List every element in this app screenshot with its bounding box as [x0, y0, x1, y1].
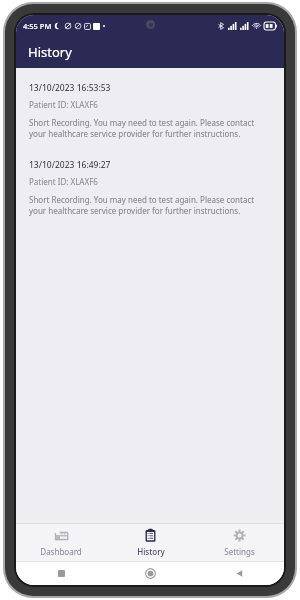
staticText: Dashboard: [40, 546, 82, 557]
staticText: Patient ID: XLAXF6: [29, 99, 98, 110]
staticText: 4:55 PM: [23, 21, 52, 31]
staticText: History: [137, 546, 165, 557]
staticText: Short Recording. You may need to test ag…: [29, 194, 271, 216]
staticText: History: [28, 43, 72, 61]
button[interactable]: Recent apps: [16, 562, 106, 585]
staticText: Short Recording. You may need to test ag…: [29, 117, 271, 139]
staticText: Patient ID: XLAXF6: [29, 176, 98, 187]
staticText: 13/10/2023 16:53:53: [29, 82, 111, 94]
button[interactable]: Back: [195, 562, 284, 585]
button[interactable]: Settings: [195, 524, 284, 561]
button[interactable]: Dashboard: [16, 524, 106, 561]
staticText: Settings: [224, 546, 255, 557]
button[interactable]: 13/10/2023 16:53:53: [16, 80, 284, 141]
button[interactable]: 13/10/2023 16:49:27: [16, 157, 284, 218]
button[interactable]: Home: [106, 562, 195, 585]
staticText: 13/10/2023 16:49:27: [29, 159, 111, 171]
button[interactable]: History: [106, 524, 195, 561]
